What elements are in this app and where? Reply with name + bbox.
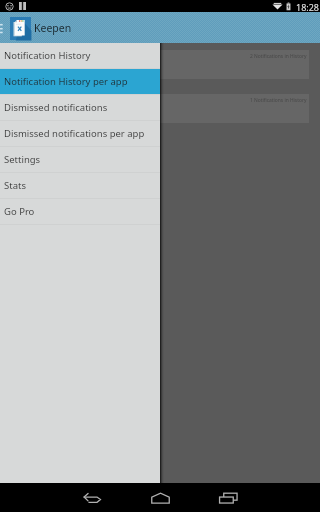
button[interactable]: Dismissed notifications per app [0, 121, 160, 146]
button[interactable]: Back [78, 487, 106, 508]
staticText: 18:28 [296, 1, 320, 13]
button[interactable]: Home [146, 487, 174, 508]
button[interactable]: 1 Notifications in History [0, 94, 309, 123]
button[interactable]: Notification History per app [0, 69, 160, 94]
button[interactable]: Notification History [0, 43, 160, 68]
button[interactable]: 2 Notifications in History [0, 50, 309, 79]
button[interactable]: Open navigation drawer [0, 12, 9, 43]
staticText: Notification History [4, 49, 91, 62]
staticText: 2 Notifications in History [250, 53, 307, 60]
staticText: Keepen [34, 21, 72, 35]
staticText: Go Pro [4, 205, 35, 218]
button[interactable]: Go Pro [0, 199, 160, 224]
staticText: Notification History per app [4, 75, 128, 88]
button[interactable]: Settings [0, 147, 160, 172]
staticText: Stats [4, 179, 26, 192]
staticText: 1 Notifications in History [250, 97, 307, 104]
staticText: Dismissed notifications per app [4, 127, 145, 140]
staticText: Settings [4, 153, 41, 166]
button[interactable]: Recent apps [214, 487, 242, 508]
staticText: Dismissed notifications [4, 101, 108, 114]
button[interactable]: Dismissed notifications [0, 95, 160, 120]
button[interactable]: Stats [0, 173, 160, 198]
